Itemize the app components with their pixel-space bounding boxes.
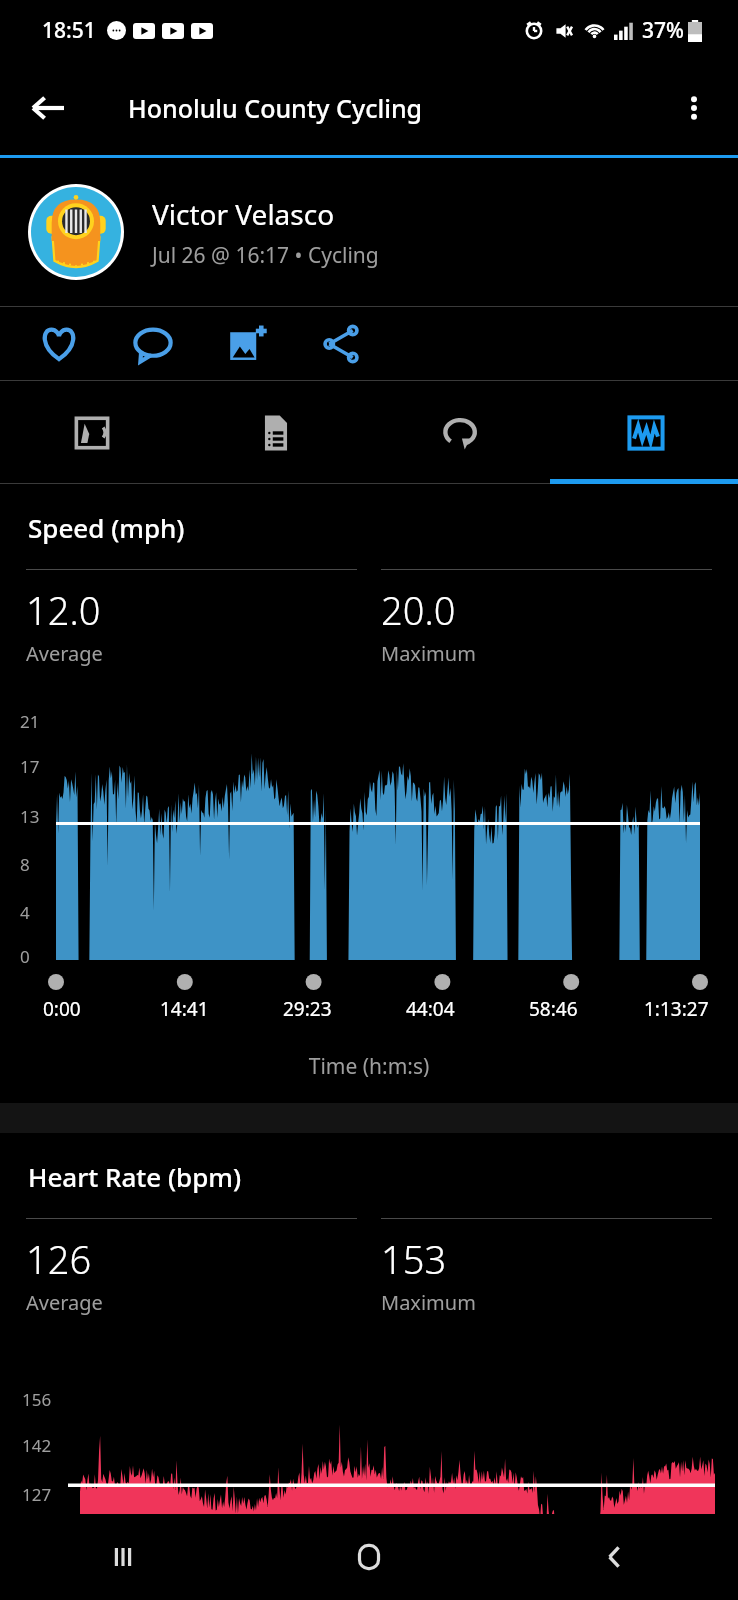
staticText: 126	[26, 1233, 92, 1285]
staticText: Heart Rate (bpm)	[28, 1159, 241, 1194]
staticText: Time (h:m:s)	[0, 1052, 738, 1081]
staticText: Speed (mph)	[28, 510, 185, 545]
button[interactable]: Add photo	[214, 311, 280, 377]
staticText: 156	[22, 1388, 52, 1411]
button[interactable]: Share	[308, 311, 374, 377]
staticText: 0:00	[43, 996, 81, 1022]
button[interactable]: More options	[666, 80, 722, 136]
staticText: 1:13:27	[644, 996, 709, 1022]
button[interactable]: Back	[492, 1514, 738, 1600]
staticText: 18:51	[42, 16, 96, 45]
staticText: 8	[20, 853, 30, 876]
staticText: 153	[381, 1233, 447, 1285]
button[interactable]: Laps	[368, 381, 553, 484]
staticText: 37%	[642, 16, 684, 45]
staticText: Average	[26, 640, 103, 667]
staticText: 58:46	[529, 996, 578, 1022]
staticText: 4	[20, 901, 30, 924]
button[interactable]: Home	[246, 1514, 492, 1600]
staticText: Maximum	[381, 1289, 476, 1316]
staticText: 20.0	[381, 584, 456, 636]
button[interactable]: Victor Velasco	[0, 158, 738, 306]
button[interactable]: Like	[26, 311, 92, 377]
button[interactable]: Recents	[0, 1514, 246, 1600]
button[interactable]: Back	[18, 78, 78, 138]
staticText: 142	[22, 1434, 52, 1457]
staticText: Honolulu County Cycling	[128, 91, 423, 125]
button[interactable]: Charts	[553, 381, 738, 484]
staticText: 12.0	[26, 584, 101, 636]
staticText: 14:41	[160, 996, 209, 1022]
button[interactable]: Details	[184, 381, 368, 484]
button[interactable]: Comment	[120, 311, 186, 377]
staticText: 0	[20, 945, 30, 968]
staticText: 127	[22, 1483, 52, 1506]
button[interactable]: Map	[0, 381, 184, 484]
staticText: 21	[20, 710, 40, 733]
staticText: 29:23	[283, 996, 332, 1022]
staticText: Average	[26, 1289, 103, 1316]
staticText: Jul 26 @ 16:17 • Cycling	[152, 241, 379, 270]
staticText: 44:04	[406, 996, 455, 1022]
staticText: Maximum	[381, 640, 476, 667]
staticText: 13	[20, 805, 40, 828]
staticText: 17	[20, 755, 40, 778]
staticText: Victor Velasco	[152, 195, 335, 233]
